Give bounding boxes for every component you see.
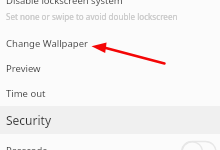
staticText: Change Wallpaper [6,37,88,50]
button[interactable]: Preview [0,58,220,84]
staticText: Passcode [6,144,48,150]
button[interactable]: Toggle passcode [181,141,220,150]
button[interactable]: Change Wallpaper [0,34,220,58]
staticText: Time out [6,87,46,100]
staticText: Preview [6,62,41,75]
button[interactable]: Passcode [0,134,220,150]
staticText: Security [6,112,52,128]
button[interactable]: Time out [0,84,220,106]
button[interactable]: Security [0,106,220,134]
staticText: Set none or swipe to avoid double locksc… [6,11,178,22]
button[interactable]: Disable lockscreen system [0,0,220,24]
staticText: Disable lockscreen system [6,0,123,7]
